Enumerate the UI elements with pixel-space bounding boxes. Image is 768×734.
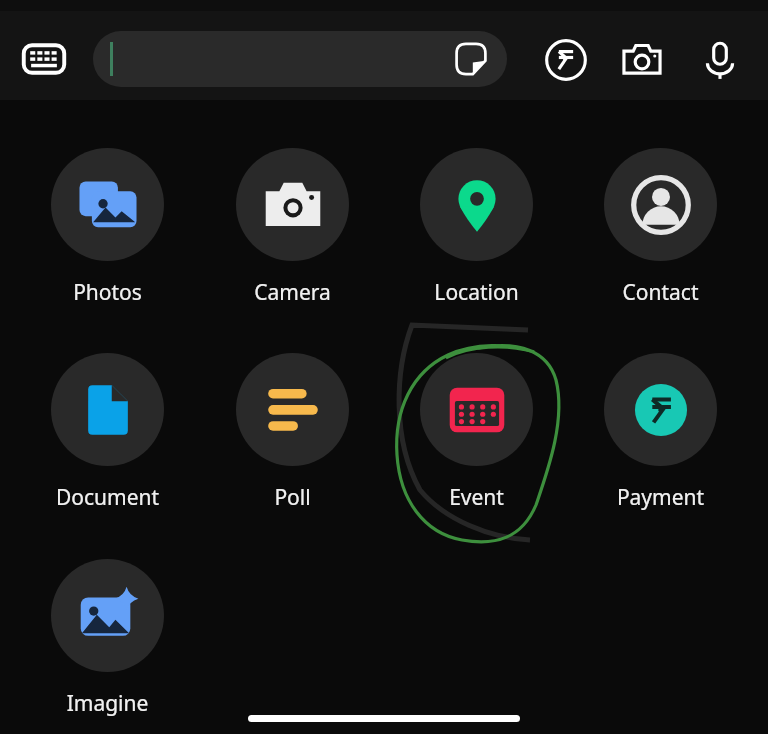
staticText: Camera xyxy=(212,278,373,307)
button[interactable]: Location xyxy=(396,142,557,307)
button[interactable]: Document xyxy=(27,347,188,512)
button[interactable]: Voice message xyxy=(692,32,748,88)
button[interactable]: Imagine xyxy=(27,553,188,718)
button[interactable]: Camera xyxy=(614,32,670,88)
button[interactable]: Camera xyxy=(212,142,373,307)
button[interactable]: Stickers xyxy=(93,31,507,87)
button[interactable]: Payments xyxy=(538,32,594,88)
staticText: Location xyxy=(396,278,557,307)
staticText: Poll xyxy=(212,483,373,512)
staticText: Event xyxy=(396,483,557,512)
button[interactable]: Contact xyxy=(580,142,741,307)
staticText: Imagine xyxy=(27,689,188,718)
staticText: Document xyxy=(27,483,188,512)
button[interactable]: Stickers xyxy=(449,37,493,81)
button[interactable]: Event xyxy=(396,347,557,512)
staticText: Photos xyxy=(27,278,188,307)
staticText: Payment xyxy=(580,483,741,512)
staticText: Contact xyxy=(580,278,741,307)
button[interactable]: Keyboard xyxy=(18,33,70,85)
button[interactable]: Photos xyxy=(27,142,188,307)
button[interactable]: Payment xyxy=(580,347,741,512)
button[interactable]: Poll xyxy=(212,347,373,512)
